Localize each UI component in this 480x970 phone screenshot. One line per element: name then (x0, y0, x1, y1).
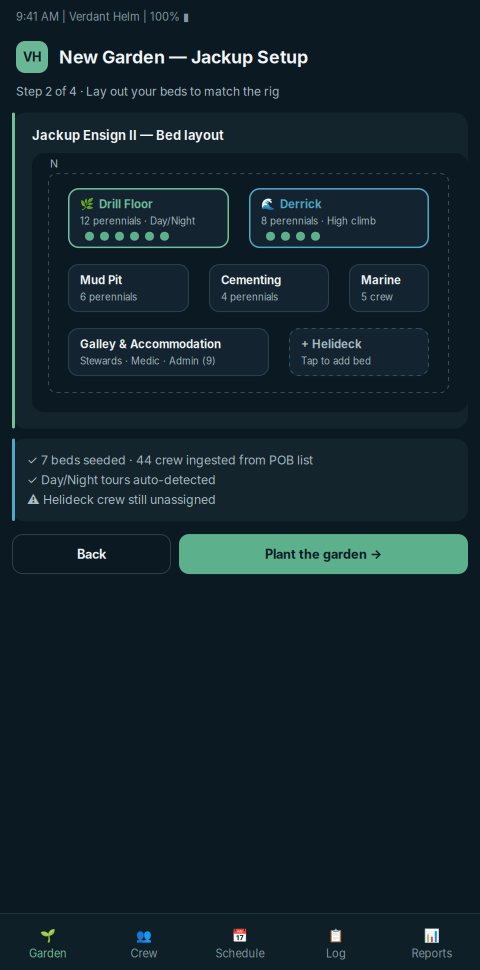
staticText: 9:41 AM | Verdant Helm | 100% ▮ (16, 10, 189, 23)
staticText: 📋 (328, 928, 344, 943)
staticText: 📅 (232, 928, 248, 943)
staticText: 🌊 (261, 197, 275, 211)
staticText: Log (326, 947, 346, 960)
button[interactable]: Galley & Accommodation (68, 328, 269, 376)
staticText: Garden (29, 947, 67, 960)
staticText: VH (23, 49, 41, 65)
button[interactable]: 👥 (96, 914, 192, 970)
button[interactable]: 🌿 (68, 188, 229, 248)
button[interactable]: Cementing (209, 264, 329, 312)
staticText: New Garden — Jackup Setup (59, 46, 308, 68)
staticText: 📊 (424, 928, 440, 943)
staticText: 4 perennials (221, 291, 278, 303)
button[interactable]: 📊 (384, 914, 480, 970)
staticText: Schedule (215, 947, 264, 960)
staticText: Stewards · Medic · Admin (9) (80, 355, 216, 367)
staticText: 🌿 (80, 197, 94, 211)
staticText: Reports (411, 947, 452, 960)
button[interactable]: 🌱 (0, 914, 96, 970)
button[interactable]: 🌊 (249, 188, 429, 248)
staticText: 🌱 (40, 928, 56, 943)
staticText: ✓ Day/Night tours auto-detected (27, 472, 216, 487)
staticText: Drill Floor (99, 197, 153, 211)
button[interactable]: 📅 (192, 914, 288, 970)
staticText: 5 crew (361, 291, 393, 303)
staticText: + Helideck (301, 337, 362, 351)
staticText: Mud Pit (80, 273, 122, 287)
staticText: Crew (130, 947, 157, 960)
staticText: ✓ 7 beds seeded · 44 crew ingested from … (27, 452, 313, 467)
button[interactable]: Marine (349, 264, 429, 312)
staticText: 6 perennials (80, 291, 137, 303)
staticText: Derrick (280, 197, 322, 211)
staticText: 8 perennials · High climb (261, 215, 376, 227)
staticText: N (50, 157, 58, 170)
staticText: ⚠ Helideck crew still unassigned (27, 492, 216, 507)
button[interactable]: Back (12, 534, 171, 574)
staticText: Marine (361, 273, 401, 287)
staticText: 12 perennials · Day/Night (80, 215, 195, 227)
staticText: 👥 (136, 928, 152, 943)
staticText: Tap to add bed (301, 355, 371, 367)
staticText: Back (77, 546, 106, 562)
button[interactable]: 📋 (288, 914, 384, 970)
button[interactable]: Plant the garden → (179, 534, 468, 574)
staticText: Plant the garden → (265, 546, 382, 562)
staticText: Galley & Accommodation (80, 337, 221, 351)
staticText: Cementing (221, 273, 281, 287)
button[interactable]: Mud Pit (68, 264, 189, 312)
button[interactable]: + Helideck (289, 328, 429, 376)
staticText: Jackup Ensign II — Bed layout (32, 127, 224, 143)
staticText: Step 2 of 4 · Lay out your beds to match… (16, 84, 279, 98)
